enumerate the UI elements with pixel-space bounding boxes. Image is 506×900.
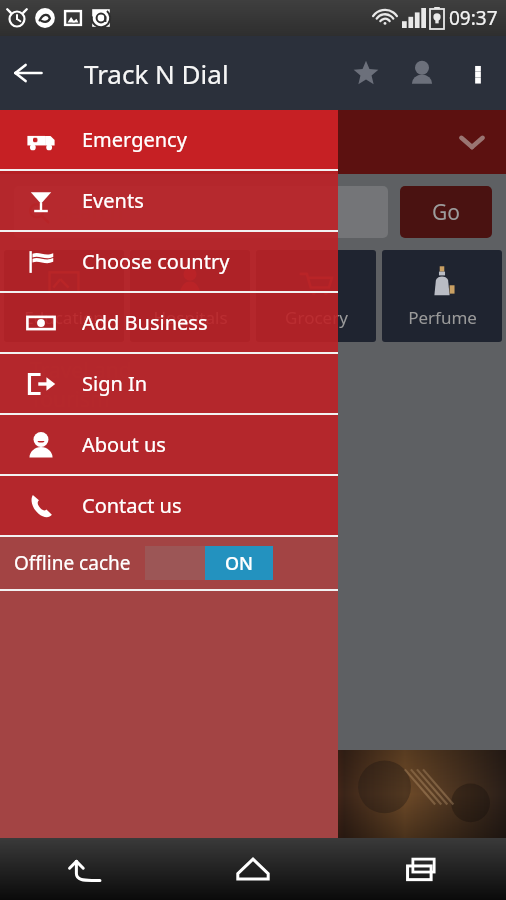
button[interactable]: Education bbox=[4, 250, 124, 342]
staticText: Contact us bbox=[82, 492, 182, 519]
staticText: 09:37 bbox=[449, 5, 498, 31]
other: Expand bbox=[452, 122, 492, 162]
staticText: Track N Dial bbox=[84, 56, 229, 91]
staticText: Perfume bbox=[408, 306, 477, 329]
button[interactable]: search bbox=[14, 186, 388, 238]
button[interactable]: Sign In bbox=[0, 354, 338, 413]
staticText: Travel and Tourism bbox=[30, 356, 132, 414]
button[interactable]: Offline cache bbox=[14, 537, 338, 589]
button[interactable]: Back bbox=[0, 45, 56, 101]
staticText: Sign In bbox=[82, 370, 148, 397]
staticText: Education bbox=[24, 306, 104, 329]
button[interactable]: Emergency bbox=[0, 110, 338, 169]
staticText: Events bbox=[82, 187, 144, 214]
staticText: search bbox=[58, 198, 123, 227]
button[interactable]: Back bbox=[0, 838, 168, 900]
button[interactable]: Add Business bbox=[0, 293, 338, 352]
staticText: Add Business bbox=[82, 309, 208, 336]
button[interactable]: Contact us bbox=[0, 476, 338, 535]
staticText: Offline cache bbox=[14, 550, 131, 576]
button[interactable]: Favourites bbox=[338, 45, 394, 101]
button[interactable]: Home bbox=[168, 838, 337, 900]
staticText: Go bbox=[432, 198, 460, 227]
staticText: Hospitals bbox=[153, 306, 228, 329]
staticText: Grocery bbox=[285, 306, 348, 329]
button[interactable]: Doha bbox=[0, 110, 506, 174]
button[interactable]: Account bbox=[394, 45, 450, 101]
button[interactable]: Go bbox=[400, 186, 492, 238]
staticText: Choose country bbox=[82, 248, 230, 275]
button[interactable]: About us bbox=[0, 415, 338, 474]
button[interactable]: Events bbox=[0, 171, 338, 230]
button[interactable]: Hospitals bbox=[130, 250, 250, 342]
staticText: Emergency bbox=[82, 126, 187, 153]
button[interactable]: Perfume bbox=[382, 250, 502, 342]
button[interactable]: More options bbox=[450, 45, 506, 101]
button[interactable]: Recents bbox=[337, 838, 506, 900]
staticText: About us bbox=[82, 431, 166, 458]
button[interactable]: Grocery bbox=[256, 250, 376, 342]
staticText: ON bbox=[225, 551, 254, 576]
button[interactable]: Choose country bbox=[0, 232, 338, 291]
